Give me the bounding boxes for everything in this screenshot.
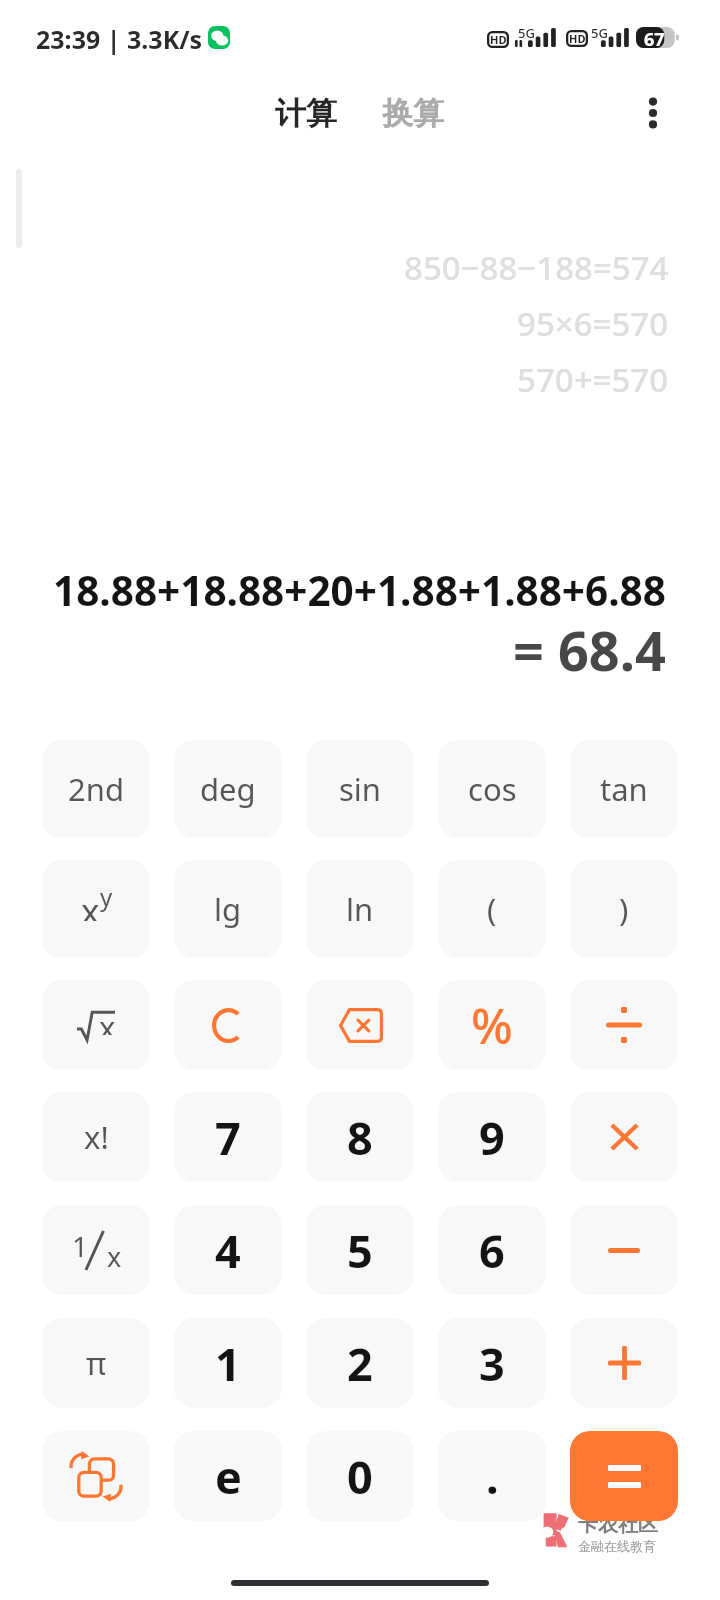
staticText: x (107, 1238, 122, 1275)
button[interactable]: 2nd (42, 740, 150, 838)
button[interactable]: π (42, 1318, 150, 1408)
staticText: 9 (479, 1107, 505, 1168)
staticText: x (81, 887, 100, 921)
staticText: . (486, 1446, 499, 1507)
button[interactable]: More options (629, 89, 677, 137)
staticText: deg (200, 768, 256, 810)
staticText: 5G (591, 24, 608, 42)
button[interactable]: 6 (438, 1205, 546, 1295)
button[interactable]: x^y (42, 860, 150, 958)
button[interactable]: 换算 (376, 88, 450, 139)
button[interactable]: 850−88−188=574 (447, 243, 720, 292)
button[interactable]: lg (174, 860, 282, 958)
button[interactable]: + (570, 1318, 678, 1408)
staticText: 1 (72, 1227, 89, 1265)
button[interactable]: × (570, 1092, 678, 1182)
button[interactable]: 计算 (269, 88, 343, 139)
staticText: 5G (518, 24, 535, 42)
staticText: 8 (347, 1107, 373, 1168)
staticText: 67 (644, 27, 665, 48)
button[interactable]: % (438, 980, 546, 1070)
button[interactable]: x! (42, 1092, 150, 1182)
staticText: y (100, 880, 113, 913)
button[interactable]: 1 (174, 1318, 282, 1408)
button[interactable]: 7 (174, 1092, 282, 1182)
staticText: 23:39 | 3.3K/s (36, 22, 203, 56)
button[interactable]: sin (306, 740, 414, 838)
staticText: lg (214, 888, 242, 930)
staticText: e (215, 1446, 242, 1507)
button[interactable]: 4 (174, 1205, 282, 1295)
button[interactable]: tan (570, 740, 678, 838)
staticText: 1 (215, 1333, 241, 1394)
staticText: 2nd (68, 768, 124, 810)
staticText: cos (468, 768, 517, 810)
button[interactable]: 95×6=570 (560, 299, 720, 348)
button[interactable]: ) (570, 860, 678, 958)
staticText: 3 (479, 1333, 505, 1394)
button[interactable]: ln (306, 860, 414, 958)
staticText: 7 (215, 1107, 241, 1168)
staticText: HD (569, 31, 586, 46)
button[interactable]: = (570, 1431, 678, 1521)
button[interactable]: 1/x (42, 1205, 150, 1295)
button[interactable]: C (174, 980, 282, 1070)
staticText: tan (600, 768, 648, 810)
button[interactable]: e (174, 1431, 282, 1521)
button[interactable]: 2 (306, 1318, 414, 1408)
staticText: 18.88+18.88+20+1.88+1.88+6.88 (53, 563, 666, 618)
button[interactable]: 9 (438, 1092, 546, 1182)
button[interactable]: ( (438, 860, 546, 958)
staticText: 850−88−188=574 (404, 245, 669, 290)
staticText: 卡农社区 (578, 1512, 658, 1537)
staticText: 计算 (275, 94, 337, 133)
button[interactable]: . (438, 1431, 546, 1521)
button[interactable]: deg (174, 740, 282, 838)
staticText: 5 (347, 1220, 373, 1281)
staticText: ln (346, 888, 374, 930)
staticText: 2 (347, 1333, 373, 1394)
staticText: x (99, 1006, 116, 1035)
button[interactable]: √x (42, 980, 150, 1070)
staticText: sin (339, 768, 382, 810)
staticText: 6 (479, 1220, 505, 1281)
button[interactable]: 8 (306, 1092, 414, 1182)
staticText: π (86, 1342, 107, 1384)
staticText: ( (487, 888, 497, 930)
staticText: 4 (215, 1220, 241, 1281)
button[interactable]: 3 (438, 1318, 546, 1408)
button[interactable]: Delete (306, 980, 414, 1070)
staticText: = 68.4 (513, 613, 666, 687)
button[interactable]: ÷ (570, 980, 678, 1070)
staticText: 570+=570 (517, 357, 669, 402)
staticText: 95×6=570 (517, 301, 669, 346)
staticText: 换算 (382, 94, 444, 133)
staticText: HD (490, 32, 507, 47)
staticText: 金融在线教育 (578, 1538, 656, 1554)
staticText: % (471, 992, 513, 1059)
button[interactable]: cos (438, 740, 546, 838)
button[interactable]: 5 (306, 1205, 414, 1295)
button[interactable]: Convert (42, 1431, 150, 1521)
button[interactable]: 0 (306, 1431, 414, 1521)
button[interactable]: 570+=570 (560, 355, 720, 404)
staticText: ) (619, 888, 629, 930)
staticText: 0 (347, 1446, 373, 1507)
staticText: x! (84, 1116, 109, 1158)
button[interactable]: − (570, 1205, 678, 1295)
